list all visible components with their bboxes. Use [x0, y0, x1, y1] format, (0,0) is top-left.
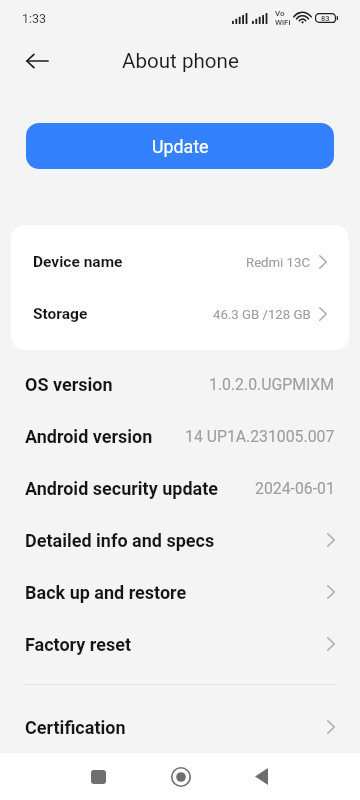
staticText: 2024-06-01 — [255, 479, 335, 498]
button[interactable]: Recent apps — [75, 753, 122, 800]
staticText: Redmi 13C — [246, 255, 311, 270]
button[interactable]: Back — [238, 753, 285, 800]
staticText: Back up and restore — [25, 582, 187, 603]
staticText: 14 UP1A.231005.007 — [185, 427, 335, 446]
button[interactable]: OS version — [0, 358, 360, 410]
button[interactable]: Factory reset — [0, 618, 360, 670]
staticText: Device name — [33, 253, 123, 271]
staticText: Android security update — [25, 478, 219, 499]
button[interactable]: Certification — [0, 701, 360, 753]
staticText: WiFi — [275, 18, 291, 27]
staticText: Factory reset — [25, 634, 132, 655]
staticText: Storage — [33, 305, 88, 323]
staticText: Vo — [275, 9, 285, 18]
staticText: 46.3 GB /128 GB — [213, 307, 311, 322]
button[interactable]: Back — [15, 39, 59, 83]
staticText: Certification — [25, 717, 126, 738]
button[interactable]: Storage — [11, 288, 349, 340]
staticText: OS version — [25, 374, 113, 395]
staticText: Update — [152, 136, 209, 157]
button[interactable]: Home — [157, 753, 204, 800]
button[interactable]: Android version — [0, 410, 360, 462]
button[interactable]: Back up and restore — [0, 566, 360, 618]
staticText: Android version — [25, 426, 153, 447]
staticText: 1.0.2.0.UGPMIXM — [209, 375, 335, 394]
staticText: 83 — [321, 14, 330, 23]
button[interactable]: Detailed info and specs — [0, 514, 360, 566]
button[interactable]: Update — [26, 123, 334, 169]
button[interactable]: Device name — [11, 236, 349, 288]
staticText: 1:33 — [22, 11, 47, 26]
button[interactable]: Android security update — [0, 462, 360, 514]
staticText: About phone — [122, 49, 239, 73]
staticText: Detailed info and specs — [25, 530, 215, 551]
